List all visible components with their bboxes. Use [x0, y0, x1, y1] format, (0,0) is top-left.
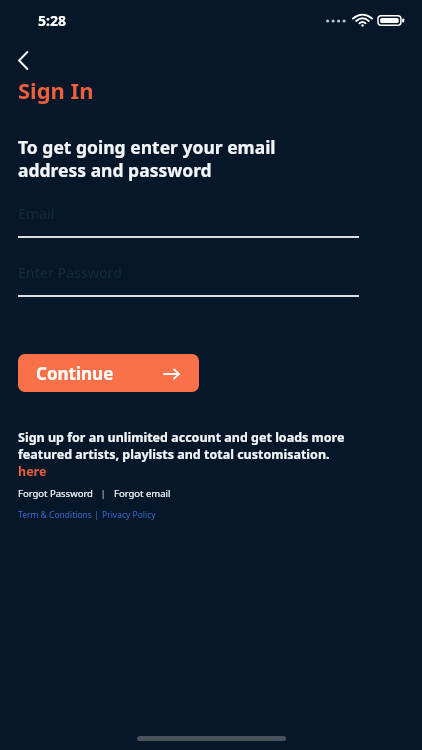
staticText: here	[18, 463, 47, 480]
staticText: Privacy Policy	[102, 509, 156, 521]
button[interactable]: Privacy Policy	[102, 509, 156, 521]
staticText: |	[93, 487, 114, 500]
button[interactable]: Enter Password	[18, 263, 404, 297]
button[interactable]: Forgot email	[114, 487, 171, 500]
button[interactable]: Forgot Password	[18, 487, 93, 500]
button[interactable]: Back	[18, 48, 48, 72]
staticText: Enter Password	[18, 263, 122, 282]
staticText: Sign up for an unlimited account and get…	[18, 429, 345, 462]
button[interactable]: here	[18, 463, 47, 480]
staticText: |	[92, 509, 102, 521]
button[interactable]: Continue	[18, 354, 199, 392]
staticText: Continue	[36, 362, 114, 385]
staticText: To get going enter your email address an…	[18, 135, 276, 182]
staticText: Forgot email	[114, 487, 171, 500]
button[interactable]: Term & Conditions	[18, 509, 92, 521]
staticText: 5:28	[38, 11, 66, 30]
staticText: Email	[18, 204, 55, 223]
staticText: Forgot Password	[18, 487, 93, 500]
button[interactable]: Email	[18, 204, 404, 238]
staticText: Term & Conditions	[18, 509, 92, 521]
staticText: Sign In	[18, 75, 94, 105]
